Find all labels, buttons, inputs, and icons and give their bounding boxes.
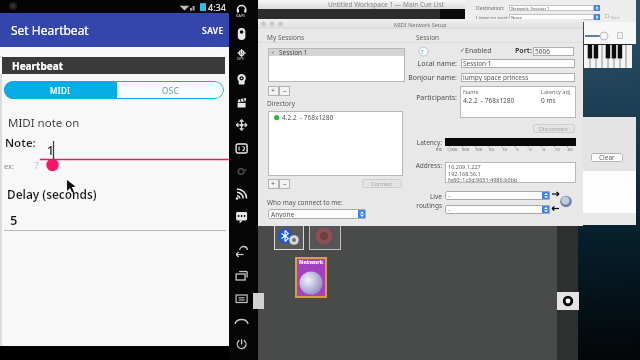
button[interactable]: Session 1 — [461, 59, 575, 68]
staticText: ✓ — [460, 46, 466, 53]
staticText: 192.168.56.1 — [448, 170, 481, 177]
staticText: Session 1 — [463, 59, 492, 68]
staticText: Participants: — [258, 93, 457, 103]
staticText: Thru — [610, 14, 620, 20]
staticText: Delay (seconds) — [7, 186, 97, 202]
staticText: 4.2.2 - 768x1280 — [463, 96, 515, 105]
staticText: Set Heartbeat — [11, 22, 89, 38]
staticText: + — [271, 86, 276, 96]
staticText: + — [271, 179, 276, 189]
staticText: 0 — [524, 147, 537, 153]
staticText: SAVE — [202, 25, 224, 37]
staticText: Session 1 — [279, 48, 308, 56]
staticText: Heartbeat — [12, 59, 64, 73]
staticText: Connect — [371, 180, 393, 188]
button[interactable]: Choose — [594, 5, 600, 11]
staticText: OSC — [162, 85, 180, 96]
staticText: lumpy space princess — [463, 73, 529, 82]
staticText: 5 — [511, 147, 524, 153]
staticText: Latency adj. — [541, 88, 572, 95]
staticText: Who may connect to me: — [267, 198, 343, 207]
staticText: – — [283, 179, 287, 189]
staticText: Port: — [515, 46, 532, 56]
staticText: fe80::1c3d:9651:4986:b0bb — [448, 176, 518, 183]
staticText: routings — [258, 201, 442, 210]
staticText: 1,000 — [445, 147, 459, 153]
staticText: 4:34 — [208, 1, 226, 13]
button[interactable]: SAVE — [197, 16, 229, 44]
button[interactable]: MIDI — [4, 81, 117, 99]
button[interactable]: - — [445, 205, 550, 214]
staticText: Live — [258, 192, 442, 201]
staticText: 0 ms — [541, 96, 556, 105]
button[interactable]: Connect — [362, 179, 402, 188]
button[interactable]: Disconnect — [533, 124, 575, 133]
staticText: Destination: — [476, 5, 505, 12]
staticText: Clear — [599, 153, 615, 162]
button[interactable]: Clear — [591, 153, 623, 162]
staticText: 4.2.2 - 768x1280 — [282, 113, 334, 122]
staticText: Local name: — [258, 59, 457, 69]
staticText: Enabled — [465, 46, 492, 56]
staticText: None — [511, 14, 522, 20]
button[interactable]: Add — [268, 86, 279, 96]
staticText: -10 — [550, 147, 563, 153]
staticText: Anyone — [271, 210, 295, 219]
staticText: 10 — [498, 147, 511, 153]
other: Tool sidebar — [229, 0, 258, 360]
button[interactable]: Network — [295, 257, 327, 298]
staticText: Bonjour name: — [258, 73, 457, 83]
staticText: 50 — [485, 147, 498, 153]
staticText: MIDI note on — [8, 115, 80, 131]
staticText: Network: Session 1 — [511, 5, 550, 11]
staticText: MIDI Network Setup — [394, 21, 447, 28]
staticText: 100 — [472, 147, 485, 153]
staticText: Session — [416, 33, 440, 42]
button[interactable]: Settings — [557, 292, 579, 310]
staticText: -50 — [563, 147, 576, 153]
staticText: Disconnect — [539, 125, 569, 133]
staticText: Listen to port: — [476, 15, 509, 22]
staticText: My Sessions — [267, 33, 305, 42]
staticText: 1 — [47, 142, 54, 158]
staticText: – — [283, 86, 287, 96]
button[interactable]: Choose — [594, 14, 600, 20]
button[interactable]: OSC — [117, 81, 224, 99]
staticText: GAPS — [236, 13, 246, 18]
button[interactable]: 5006 — [533, 47, 574, 56]
staticText: 7 — [34, 160, 39, 171]
staticText: 5006 — [535, 47, 550, 56]
staticText: GPS — [237, 56, 244, 61]
button[interactable]: lumpy space princess — [461, 73, 575, 82]
staticText: - — [448, 206, 450, 214]
staticText: ex: — [4, 161, 15, 171]
staticText: ms — [258, 146, 442, 152]
staticText: Latency: — [258, 138, 442, 147]
staticText: 10.209.1.227 — [448, 163, 481, 170]
staticText: MIDI — [50, 85, 71, 96]
staticText: ✓ — [271, 49, 276, 55]
button[interactable]: - — [445, 191, 550, 200]
staticText: 5 — [10, 211, 18, 229]
staticText: Directory — [267, 99, 296, 108]
button[interactable]: Remove — [279, 179, 290, 189]
staticText: Untitled Workspace 1 — Main Cue List — [328, 0, 444, 9]
button[interactable]: Add — [268, 179, 279, 189]
button[interactable]: Anyone — [268, 209, 366, 219]
button[interactable]: Remove — [279, 86, 290, 96]
staticText: -5 — [537, 147, 550, 153]
staticText: 500 — [459, 147, 472, 153]
staticText: - — [448, 192, 450, 200]
staticText: Network — [299, 258, 324, 265]
staticText: Note: — [5, 135, 36, 151]
staticText: ? — [421, 48, 424, 55]
staticText: Address: — [258, 161, 442, 170]
staticText: Name — [463, 88, 479, 95]
